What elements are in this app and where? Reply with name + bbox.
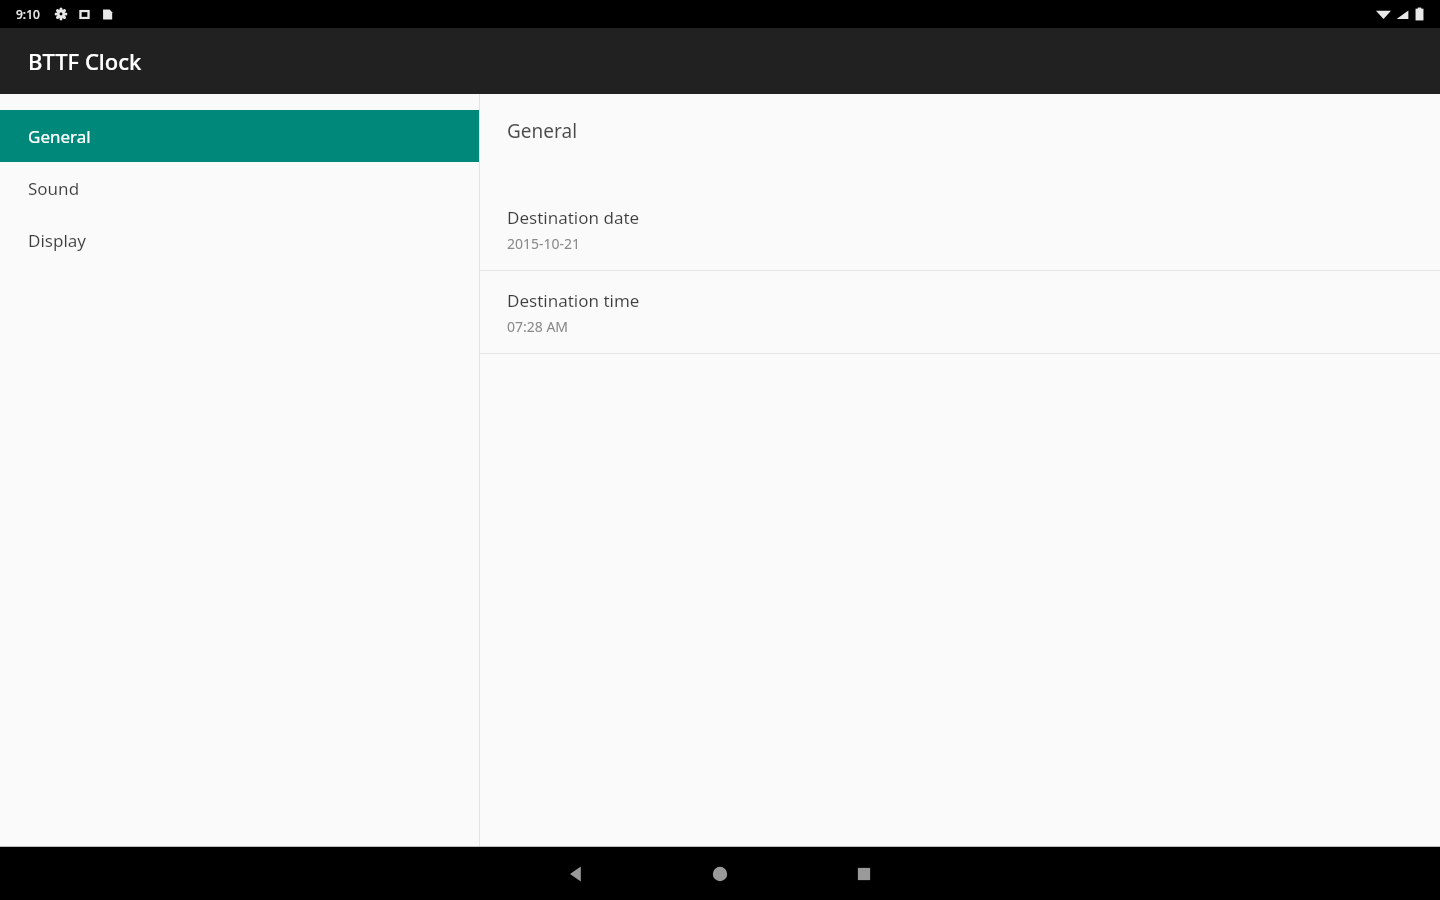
staticText: General <box>507 118 578 144</box>
staticText: General <box>28 125 91 148</box>
staticText: 07:28 AM <box>507 317 569 336</box>
button[interactable]: Recent apps <box>816 847 912 900</box>
button[interactable]: Sound <box>0 162 479 214</box>
button[interactable]: Destination date <box>480 188 1440 270</box>
button[interactable]: General <box>0 110 479 162</box>
button[interactable]: Display <box>0 214 479 266</box>
staticText: Destination time <box>507 289 640 312</box>
button[interactable]: Destination time <box>480 271 1440 353</box>
staticText: 2015-10-21 <box>507 234 581 253</box>
staticText: Destination date <box>507 206 640 229</box>
button[interactable]: Back <box>528 847 624 900</box>
staticText: 9:10 <box>16 6 40 22</box>
button[interactable]: Home <box>672 847 768 900</box>
staticText: Display <box>28 229 86 252</box>
staticText: Sound <box>28 177 80 200</box>
staticText: BTTF Clock <box>28 46 142 76</box>
